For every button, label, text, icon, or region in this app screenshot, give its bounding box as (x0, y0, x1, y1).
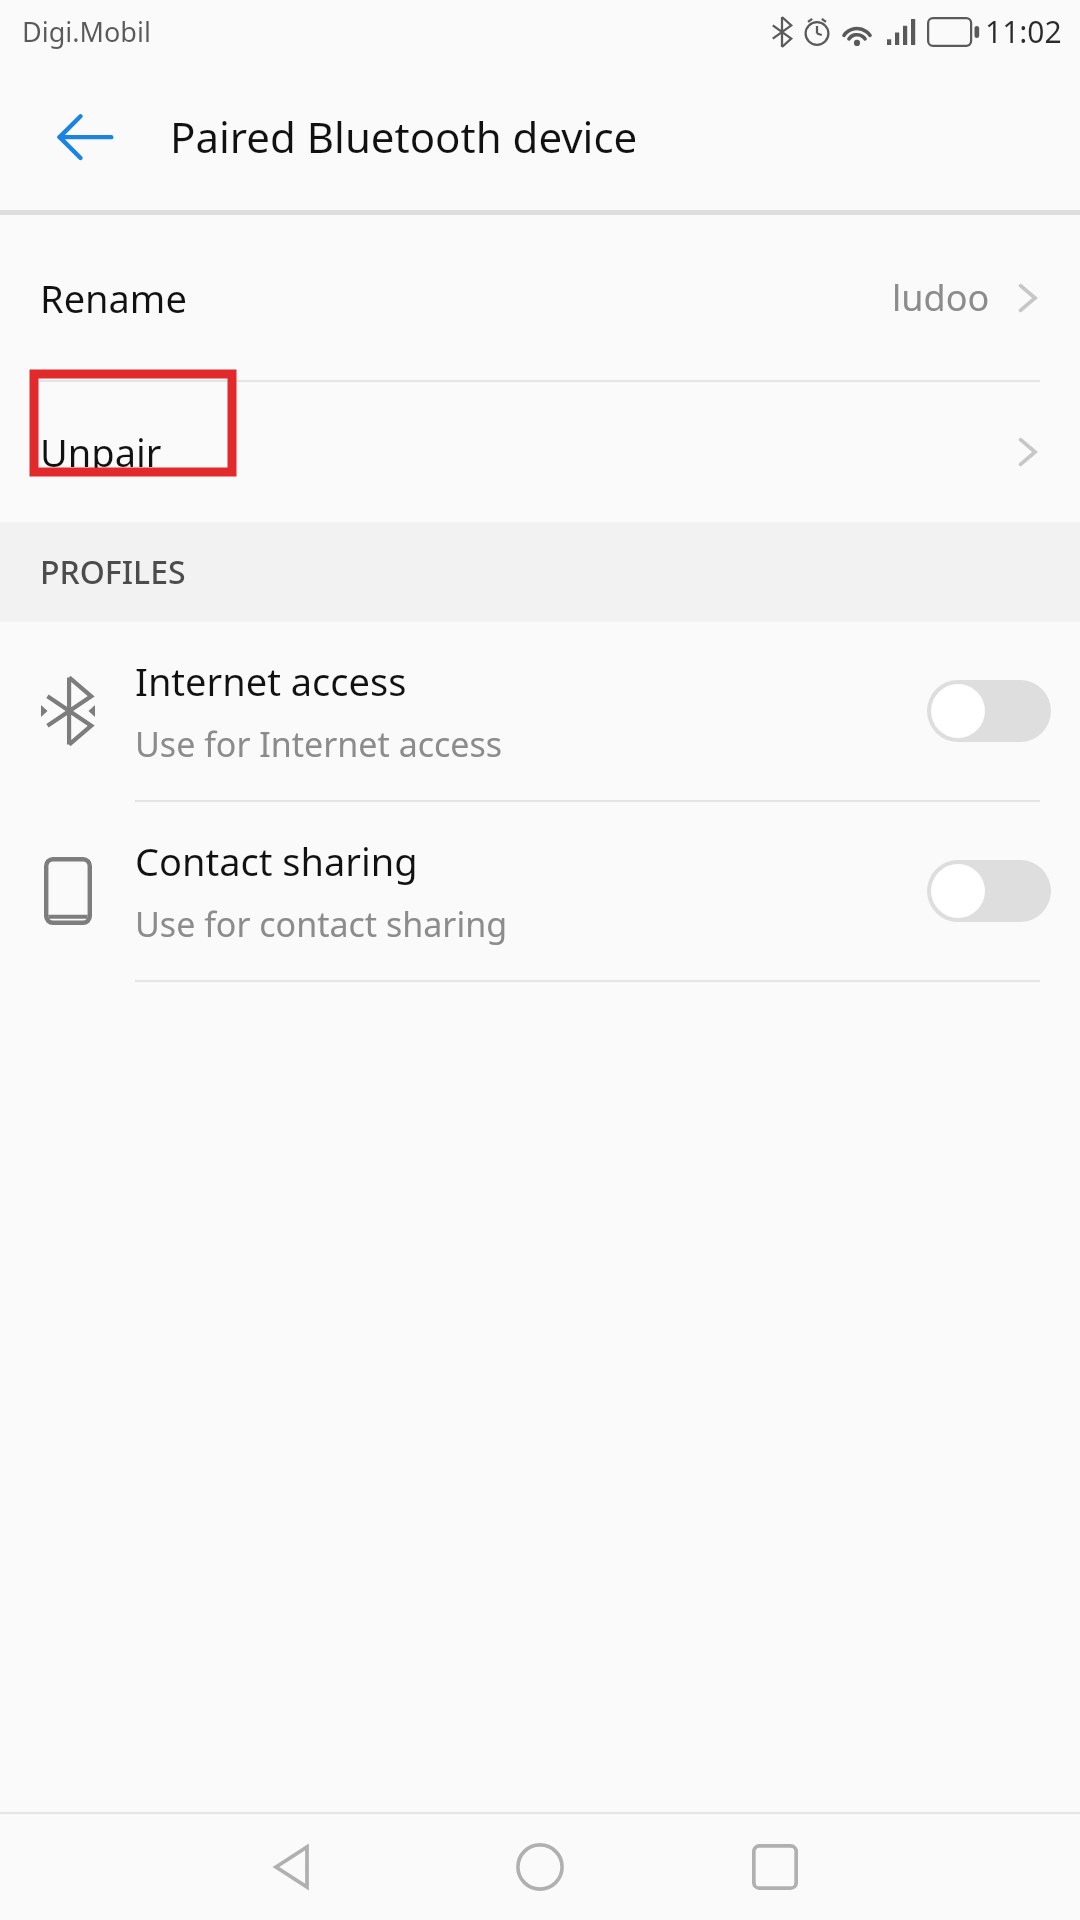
staticText: Use for Internet access (135, 721, 503, 767)
button[interactable]: Back (26, 78, 142, 194)
staticText: Contact sharing (135, 835, 418, 887)
button[interactable]: Home (480, 1814, 600, 1920)
staticText: Digi.Mobil (22, 13, 151, 50)
staticText: 11:02 (985, 11, 1062, 52)
button[interactable]: Rename (0, 215, 1080, 380)
staticText: ludoo (892, 273, 990, 322)
button[interactable]: Unpair (0, 382, 1080, 522)
button[interactable]: Toggle Internet access (898, 622, 1080, 800)
button[interactable]: Internet access (0, 622, 1080, 800)
staticText: Use for contact sharing (135, 901, 508, 947)
staticText: Unpair (40, 426, 162, 478)
button[interactable]: Recents (715, 1814, 835, 1920)
button[interactable]: Back (232, 1814, 352, 1920)
staticText: Rename (40, 272, 187, 324)
button[interactable]: Toggle Contact sharing (898, 802, 1080, 980)
staticText: Internet access (135, 655, 407, 707)
staticText: PROFILES (40, 550, 186, 594)
staticText: Paired Bluetooth device (170, 108, 638, 165)
button[interactable]: Contact sharing (0, 802, 1080, 980)
